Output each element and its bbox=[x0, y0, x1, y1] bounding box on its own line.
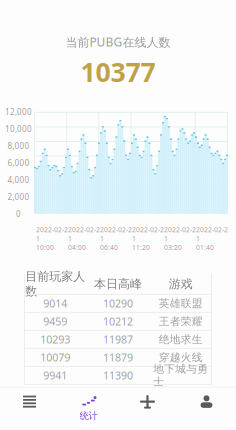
staticText: 4,000 bbox=[7, 174, 29, 185]
staticText: 10377 bbox=[80, 54, 155, 89]
button[interactable]: 统计 bbox=[59, 389, 118, 429]
staticText: 本日高峰 bbox=[94, 276, 142, 291]
staticText: 王者荣耀 bbox=[159, 315, 203, 328]
staticText: 11390 bbox=[103, 368, 133, 382]
staticText: 9941 bbox=[43, 368, 67, 382]
button[interactable]: Profile bbox=[177, 388, 236, 430]
staticText: 统计 bbox=[79, 410, 97, 422]
staticText: 10,000 bbox=[5, 123, 32, 134]
staticText: 地下城与勇士 bbox=[153, 362, 208, 388]
staticText: 英雄联盟 bbox=[159, 297, 203, 310]
button[interactable]: Flights bbox=[118, 388, 177, 430]
staticText: 10079 bbox=[40, 350, 70, 364]
button[interactable]: List bbox=[0, 388, 59, 430]
staticText: 0 bbox=[16, 208, 21, 219]
staticText: 绝地求生 bbox=[159, 333, 203, 346]
staticText: 6,000 bbox=[7, 157, 29, 168]
staticText: 8,000 bbox=[7, 140, 29, 151]
staticText: 10212 bbox=[103, 314, 133, 328]
staticText: 11987 bbox=[103, 332, 133, 346]
staticText: 9014 bbox=[43, 296, 67, 310]
staticText: 10290 bbox=[103, 296, 133, 310]
staticText: 12,000 bbox=[5, 106, 32, 117]
staticText: 2022-02-21 01:40 bbox=[196, 225, 228, 252]
staticText: 2,000 bbox=[7, 191, 29, 202]
staticText: 2022-02-21 03:20 bbox=[164, 225, 196, 252]
staticText: 11879 bbox=[103, 350, 133, 364]
staticText: 当前PUBG在线人数 bbox=[65, 34, 170, 50]
staticText: 10293 bbox=[40, 332, 70, 346]
staticText: 2022-02-21 11:20 bbox=[132, 225, 164, 252]
staticText: 游戏 bbox=[169, 276, 193, 291]
staticText: 9459 bbox=[43, 314, 67, 328]
staticText: 2022-02-21 10:00 bbox=[36, 225, 68, 252]
staticText: 2022-02-21 04:00 bbox=[68, 225, 100, 252]
staticText: 目前玩家人数 bbox=[25, 269, 85, 299]
staticText: 2022-02-21 06:40 bbox=[100, 225, 132, 252]
staticText: 穿越火线 bbox=[159, 351, 203, 364]
